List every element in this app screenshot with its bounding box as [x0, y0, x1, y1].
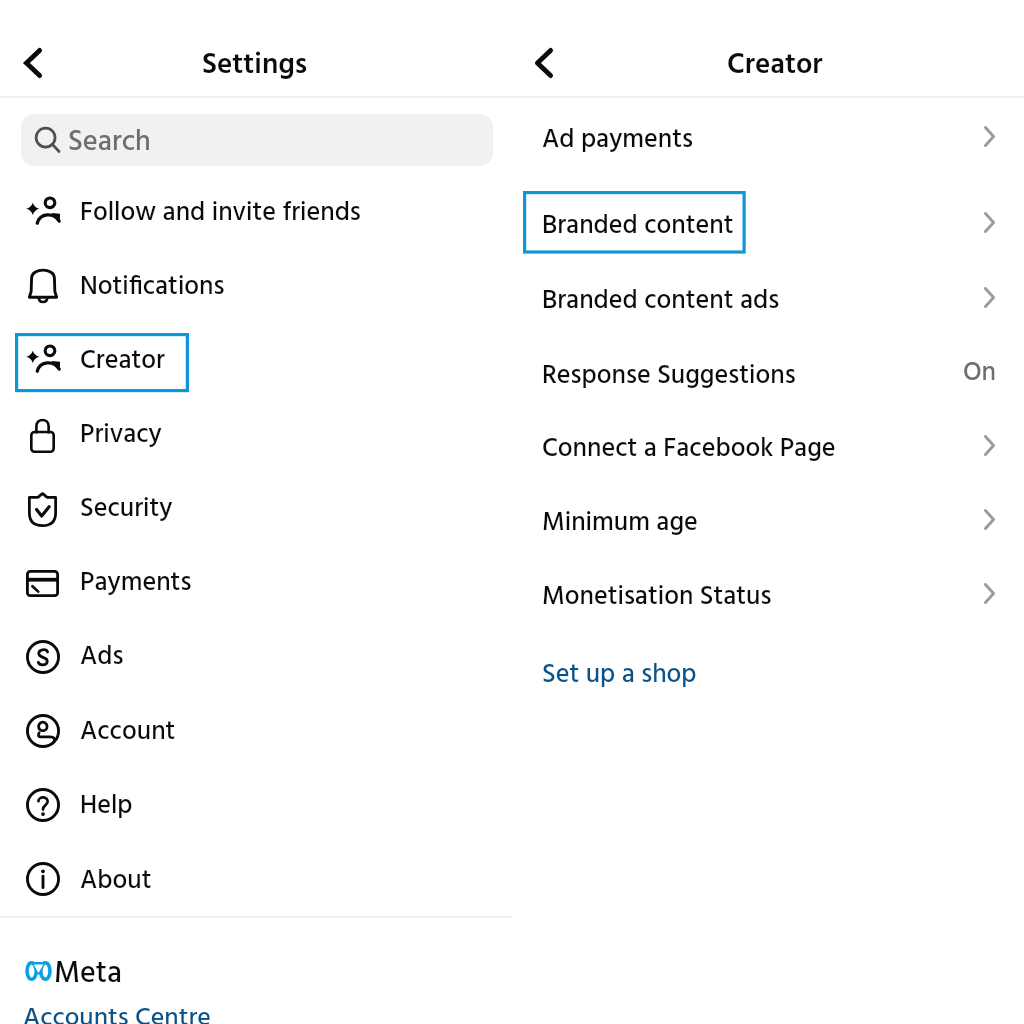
- staticText: Connect a Facebook Page: [542, 428, 836, 470]
- button[interactable]: Branded content: [512, 187, 1024, 261]
- button[interactable]: Connect a Facebook Page: [512, 410, 1024, 484]
- button[interactable]: Ads: [0, 618, 512, 692]
- button[interactable]: Creator: [0, 322, 512, 396]
- staticText: Help: [80, 785, 133, 827]
- button[interactable]: Monetisation Status: [512, 558, 1024, 632]
- staticText: Branded content ads: [542, 280, 780, 322]
- button[interactable]: Branded content ads: [512, 262, 1024, 336]
- staticText: Ad payments: [542, 119, 694, 161]
- button[interactable]: Minimum age: [512, 484, 1024, 558]
- staticText: Response Suggestions: [542, 355, 796, 397]
- button[interactable]: Search: [21, 114, 493, 166]
- staticText: Follow and invite friends: [80, 192, 361, 234]
- staticText: Set up a shop: [542, 654, 697, 696]
- button[interactable]: Account: [0, 693, 512, 767]
- staticText: Creator: [727, 42, 823, 88]
- button[interactable]: Ad payments: [512, 101, 1024, 175]
- staticText: Creator: [80, 340, 165, 382]
- staticText: Search: [68, 120, 151, 166]
- staticText: Payments: [80, 562, 192, 604]
- button[interactable]: About: [0, 842, 512, 916]
- staticText: Minimum age: [542, 502, 698, 544]
- staticText: On: [963, 352, 997, 394]
- button[interactable]: Notifications: [0, 248, 512, 322]
- button[interactable]: Set up a shop: [512, 636, 1024, 710]
- button[interactable]: Response Suggestions: [512, 337, 1024, 411]
- button[interactable]: Back: [521, 38, 567, 82]
- staticText: Branded content: [542, 205, 734, 247]
- staticText: Ads: [80, 636, 124, 678]
- staticText: About: [80, 860, 152, 902]
- button[interactable]: Security: [0, 470, 512, 544]
- staticText: Monetisation Status: [542, 576, 772, 618]
- staticText: Notifications: [80, 266, 225, 308]
- staticText: Security: [80, 488, 173, 530]
- staticText: Accounts Centre: [23, 998, 211, 1024]
- button[interactable]: Back: [10, 38, 56, 82]
- staticText: Meta: [54, 950, 122, 998]
- staticText: Settings: [202, 42, 308, 88]
- staticText: Account: [80, 711, 176, 753]
- button[interactable]: Payments: [0, 544, 512, 618]
- staticText: Privacy: [80, 414, 162, 456]
- button[interactable]: Privacy: [0, 396, 512, 470]
- button[interactable]: Help: [0, 767, 512, 841]
- button[interactable]: Follow and invite friends: [0, 174, 512, 248]
